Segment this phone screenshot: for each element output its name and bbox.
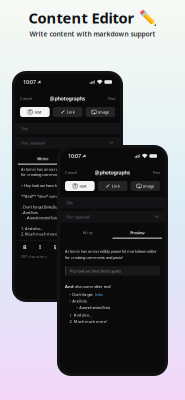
staticText: - Aaand nested lists [21,215,58,220]
staticText: T [74,183,76,188]
staticText: Post [108,96,115,101]
staticText: Image [143,183,154,189]
button[interactable]: S [51,243,59,251]
staticText: Content Editor ✏️ [28,8,156,27]
staticText: @photographs [49,95,85,102]
button[interactable]: Flair (optional) [15,137,120,149]
staticText: Text [34,109,42,115]
staticText: Link [67,109,75,115]
button[interactable]: Post [151,168,162,177]
staticText: Don't forget [72,292,93,297]
button[interactable]: Write [63,228,112,239]
staticText: S [53,244,56,251]
button[interactable]: T [65,181,95,191]
button[interactable]: Link [53,107,82,117]
button[interactable]: Cancel [18,94,34,103]
staticText: I [39,244,41,251]
staticText: T [29,109,31,114]
staticText: for creating comments and posts! [65,255,123,260]
staticText: Write content with markdown support [29,29,155,38]
staticText: Title [21,126,28,131]
staticText: And [65,284,74,289]
staticText: - Don't forget [links](url) [21,204,61,210]
staticText: B [23,244,27,251]
button[interactable]: Write [18,154,67,165]
staticText: 2. Much much more! [21,231,58,237]
button[interactable]: Post [106,94,117,103]
button[interactable]: Link [98,181,127,191]
staticText: Artemis has an incredibly powerful markd… [21,167,113,177]
staticText: Aaand nested lists [79,305,110,310]
button[interactable]: Cancel [63,168,79,177]
staticText: Write [37,156,48,161]
staticText: Image [98,109,109,115]
staticText: Cancel [65,170,77,175]
staticText: 10:07 [68,152,81,160]
staticText: Post [153,170,160,175]
staticText: Link [112,183,120,189]
staticText: links [95,292,103,297]
staticText: Flair (optional) [66,214,90,219]
button[interactable]: Flair (optional) [60,211,165,223]
staticText: Preview [85,156,99,161]
staticText: Hey look we have block quotes [69,268,121,274]
staticText: 287 characters [21,254,47,259]
staticText: @photographs [94,169,130,176]
staticText: Flair (optional) [21,140,45,145]
staticText: Write [83,230,93,235]
staticText: 10:07 [23,78,36,86]
button[interactable]: Image [85,107,115,117]
staticText: 1. [69,312,72,318]
staticText: 2. [69,319,72,324]
button[interactable]: T [20,107,50,117]
staticText: Cancel [20,96,32,101]
button[interactable]: I [36,243,44,251]
button[interactable]: B [21,243,29,251]
staticText: And lists [72,298,87,304]
staticText: **And** *also* some other text! [21,193,77,199]
staticText: Much much more! [74,319,107,324]
button[interactable]: Image [130,181,160,191]
staticText: Title [66,200,73,205]
staticText: > Hey look we have block quotes [21,183,76,188]
staticText: And also... [74,312,92,318]
staticText: also some other text! [74,284,111,289]
staticText: Text [79,183,87,189]
staticText: 1. And also... [21,226,43,231]
staticText: Artemis has an incredibly powerful markd… [65,249,157,254]
button[interactable]: Preview [67,154,117,165]
staticText: Preview [130,230,144,235]
staticText: - And lists [21,210,38,215]
button[interactable]: Preview [112,228,162,239]
